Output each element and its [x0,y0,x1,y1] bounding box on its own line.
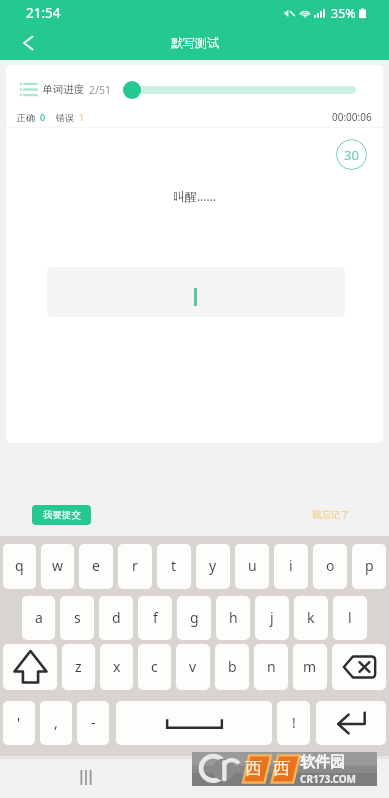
staticText: z [75,657,82,676]
staticText: , [54,713,58,732]
button[interactable]: g [177,596,211,640]
button[interactable]: n [254,644,288,690]
staticText: x [113,657,121,676]
staticText: r [132,556,138,575]
button[interactable]: Enter [316,701,386,745]
staticText: b [228,657,237,676]
staticText: o [326,556,335,575]
button[interactable]: h [216,596,250,640]
staticText: 正确 [17,112,35,123]
staticText: 错误 [56,112,74,123]
staticText: 21:54 [26,4,61,22]
staticText: s [74,608,81,627]
button[interactable]: x [100,644,133,690]
button[interactable]: s [60,596,94,640]
staticText: d [112,608,121,627]
staticText: v [189,657,197,676]
staticText: 西 [245,758,262,779]
button[interactable]: l [333,596,367,640]
button[interactable]: k [294,596,328,640]
staticText: 我要提交 [43,509,81,521]
staticText: j [270,608,274,627]
staticText: w [52,556,64,575]
staticText: - [91,713,96,732]
staticText: 默写测试 [171,35,219,50]
staticText: l [348,608,352,627]
button[interactable] [47,267,345,317]
staticText: k [307,608,315,627]
staticText: f [153,608,158,627]
button[interactable]: ' [3,701,35,745]
button[interactable]: Recent apps [66,757,106,797]
staticText: 35% [331,5,356,22]
button[interactable]: y [196,544,230,589]
button[interactable]: 我要提交 [32,505,91,525]
button[interactable]: o [313,544,347,589]
button[interactable]: Backspace [332,644,386,690]
staticText: e [92,556,100,575]
staticText: 0 [40,111,46,123]
staticText: y [209,556,217,575]
button[interactable]: Shift [3,644,57,690]
button[interactable]: e [79,544,113,589]
staticText: g [190,608,199,627]
staticText: 00:00:06 [332,110,372,124]
button[interactable]: r [118,544,152,589]
staticText: q [15,556,24,575]
button[interactable]: t [157,544,191,589]
button[interactable]: Space [116,701,272,745]
button[interactable]: a [22,596,55,640]
staticText: 30 [344,146,359,164]
staticText: 叫醒…… [173,188,216,204]
staticText: c [151,657,158,676]
button[interactable]: Back [11,26,45,60]
staticText: 1 [79,111,85,123]
button[interactable]: c [138,644,171,690]
button[interactable]: 我忘记了 [312,509,350,521]
staticText: 我忘记了 [312,509,350,521]
staticText: h [229,608,238,627]
staticText: ! [292,713,296,732]
staticText: u [248,556,257,575]
staticText: i [289,556,293,575]
button[interactable]: m [293,644,327,690]
staticText: t [171,556,177,575]
button[interactable]: - [77,701,109,745]
button[interactable]: w [41,544,74,589]
staticText: 软件园 [300,753,345,772]
staticText: ' [17,713,21,732]
staticText: CR173.COM [300,772,357,786]
staticText: n [267,657,276,676]
button[interactable]: p [352,544,386,589]
staticText: 单词进度 [42,83,84,96]
button[interactable]: f [138,596,172,640]
button[interactable]: ! [277,701,310,745]
staticText: 西 [273,758,290,779]
button[interactable]: b [215,644,249,690]
staticText: 2/51 [89,83,111,97]
button[interactable]: d [99,596,133,640]
button[interactable]: , [40,701,72,745]
button[interactable]: z [62,644,95,690]
staticText: a [35,608,43,627]
staticText: m [303,657,317,676]
button[interactable]: q [3,544,36,589]
staticText: p [365,556,374,575]
button[interactable]: v [176,644,210,690]
button[interactable]: j [255,596,289,640]
button[interactable]: i [274,544,308,589]
button[interactable]: u [235,544,269,589]
